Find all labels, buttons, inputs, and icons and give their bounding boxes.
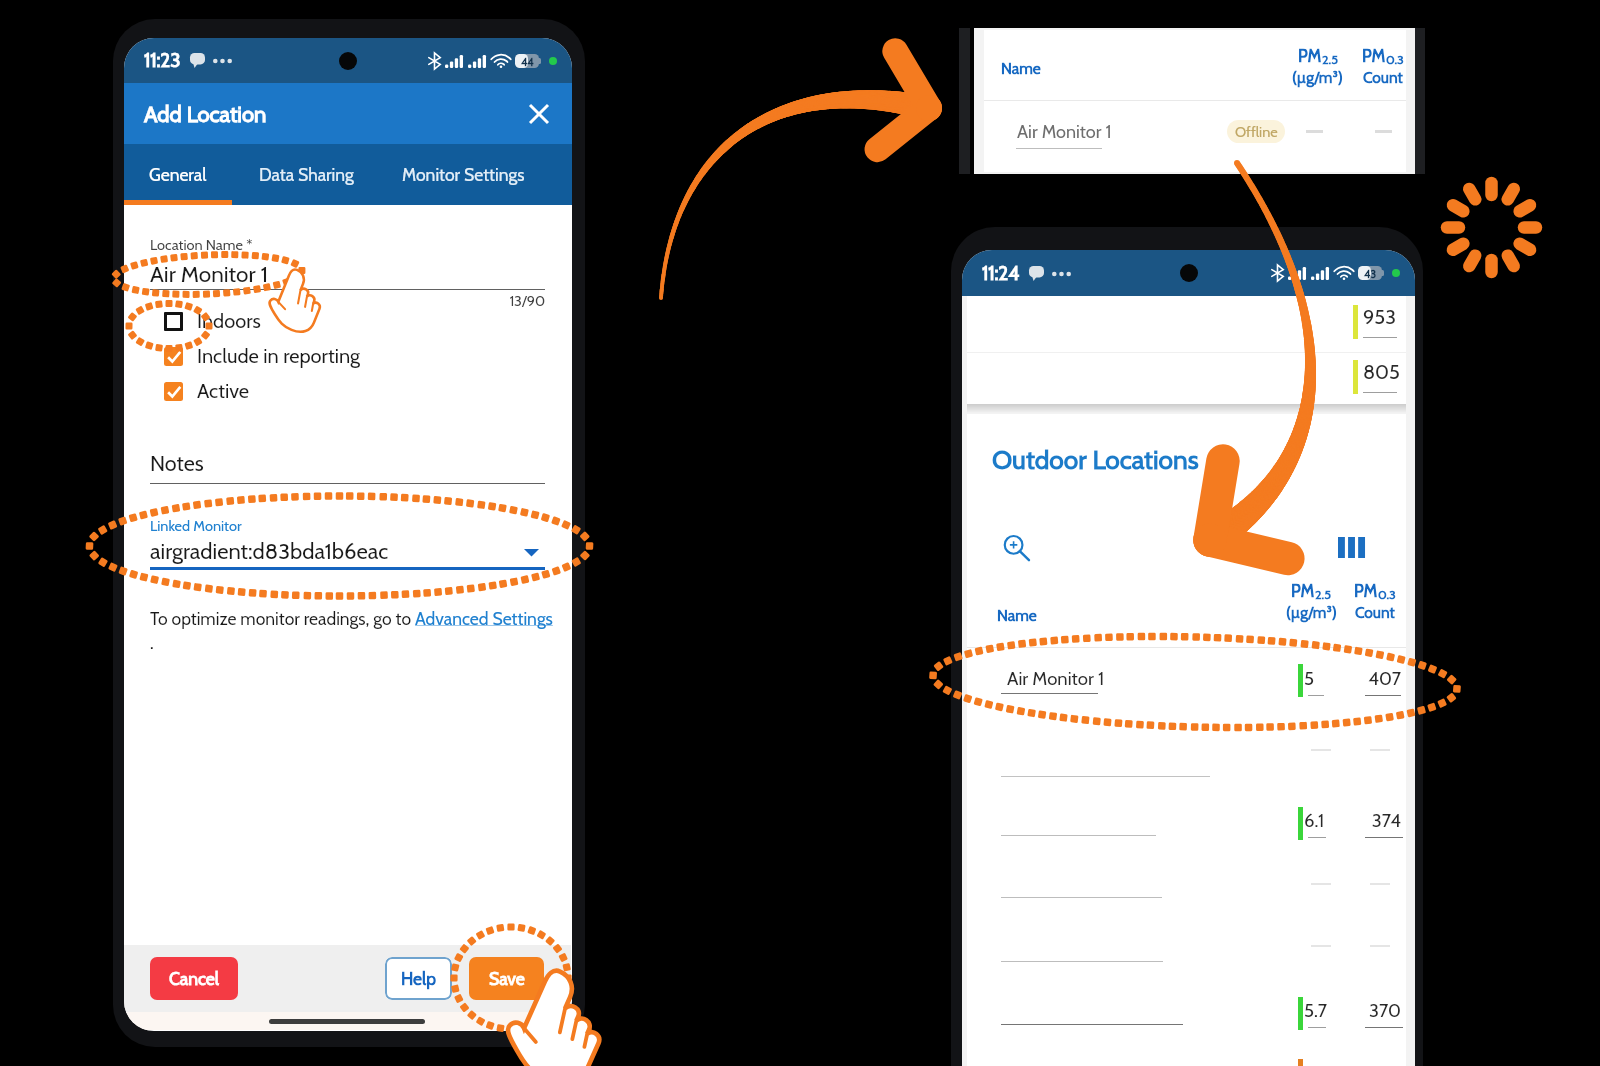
button[interactable]: Save <box>469 957 544 1000</box>
staticText: 43 <box>1364 267 1377 280</box>
staticText: 44 <box>521 55 534 68</box>
staticText: PM <box>1354 581 1378 602</box>
staticText: Linked Monitor <box>150 517 242 535</box>
staticText: 2.5 <box>1315 587 1331 602</box>
staticText: Monitor Settings <box>402 164 525 185</box>
staticText: (µg/m³) <box>1286 603 1337 622</box>
staticText: 0.3 <box>1378 587 1396 602</box>
button[interactable]: Advanced Settings <box>415 608 553 629</box>
staticText: 6.1 <box>1304 809 1325 831</box>
button[interactable]: Help <box>385 957 452 1000</box>
staticText: Name <box>997 606 1037 625</box>
staticText: 2.5 <box>1322 52 1338 67</box>
staticText: (µg/m³) <box>1292 68 1343 87</box>
staticText: Offline <box>1235 123 1278 141</box>
staticText: 5 <box>1304 667 1315 689</box>
staticText: PM <box>1362 46 1386 67</box>
staticText: Cancel <box>169 968 219 989</box>
staticText: 11:23 <box>144 49 181 72</box>
staticText: Air Monitor 1 <box>1007 667 1104 689</box>
staticText: Notes <box>150 450 204 476</box>
staticText: 13/90 <box>150 292 545 310</box>
staticText: To optimize monitor readings, go to <box>150 608 415 629</box>
button[interactable]: Columns <box>1332 528 1370 566</box>
staticText: Save <box>489 968 525 989</box>
staticText: Active <box>197 379 250 403</box>
staticText: airgradient:d83bda1b6eac <box>150 538 389 565</box>
button[interactable]: Search <box>996 528 1036 568</box>
staticText: Outdoor Locations <box>992 444 1199 476</box>
staticText: 407 <box>1360 667 1401 689</box>
staticText: 805 <box>1363 360 1407 384</box>
staticText: 0.3 <box>1386 52 1404 67</box>
button[interactable]: Include in reporting <box>164 341 444 371</box>
staticText: 374 <box>1360 809 1401 831</box>
staticText: 5.7 <box>1304 999 1328 1021</box>
staticText: Add Location <box>144 101 267 128</box>
staticText: Count <box>1355 603 1395 622</box>
staticText: PM <box>1291 581 1315 602</box>
button[interactable]: General <box>124 144 232 205</box>
staticText: Name <box>1001 59 1041 78</box>
staticText: Air Monitor 1 <box>1017 121 1112 143</box>
staticText: 11:24 <box>982 262 1020 285</box>
button[interactable]: Monitor Settings <box>380 144 547 205</box>
staticText: 953 <box>1363 305 1407 329</box>
staticText: Data Sharing <box>259 164 354 185</box>
staticText: PM <box>1298 46 1322 67</box>
staticText: Count <box>1363 68 1403 87</box>
button[interactable]: Active <box>164 376 444 406</box>
staticText: Indoors <box>197 309 261 333</box>
staticText: Location Name * <box>150 236 253 254</box>
staticText: Air Monitor 1 <box>150 260 268 287</box>
button[interactable]: Indoors <box>164 306 444 336</box>
button[interactable]: Close <box>517 92 561 136</box>
staticText: Help <box>401 968 436 989</box>
button[interactable]: Cancel <box>150 957 238 1000</box>
staticText: Advanced Settings <box>415 608 553 629</box>
staticText: Include in reporting <box>197 344 361 368</box>
staticText: 370 <box>1360 999 1401 1021</box>
button[interactable]: Data Sharing <box>232 144 380 205</box>
staticText: General <box>149 164 207 185</box>
staticText: . <box>150 632 154 653</box>
